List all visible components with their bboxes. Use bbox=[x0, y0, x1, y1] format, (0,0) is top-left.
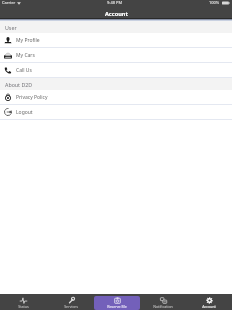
staticText: Status bbox=[18, 304, 29, 309]
button[interactable]: Notification bbox=[140, 296, 186, 310]
button[interactable]: Logout bbox=[0, 105, 232, 119]
staticText: Reserve Me bbox=[107, 304, 127, 309]
staticText: Services bbox=[64, 304, 78, 309]
staticText: Account bbox=[202, 304, 216, 309]
button[interactable]: Call Us bbox=[0, 63, 232, 77]
staticText: 100% bbox=[209, 0, 220, 5]
staticText: Logout bbox=[16, 109, 33, 116]
staticText: Account bbox=[105, 10, 128, 18]
staticText: User bbox=[5, 24, 17, 31]
staticText: Call Us bbox=[16, 67, 32, 74]
button[interactable]: My Profile bbox=[0, 33, 232, 47]
staticText: About D2D bbox=[5, 81, 33, 88]
staticText: Privacy Policy bbox=[16, 94, 48, 101]
staticText: Notification bbox=[153, 304, 173, 309]
staticText: My Cars bbox=[16, 52, 35, 59]
staticText: 9:48 PM bbox=[107, 0, 123, 5]
button[interactable]: Account bbox=[186, 296, 232, 310]
button[interactable]: Reserve Me bbox=[94, 296, 140, 310]
button[interactable]: My Cars bbox=[0, 48, 232, 62]
button[interactable]: Services bbox=[47, 296, 94, 310]
button[interactable]: Status bbox=[0, 296, 47, 310]
button[interactable]: Privacy Policy bbox=[0, 90, 232, 104]
staticText: Carrier bbox=[2, 0, 16, 5]
staticText: My Profile bbox=[16, 37, 40, 44]
